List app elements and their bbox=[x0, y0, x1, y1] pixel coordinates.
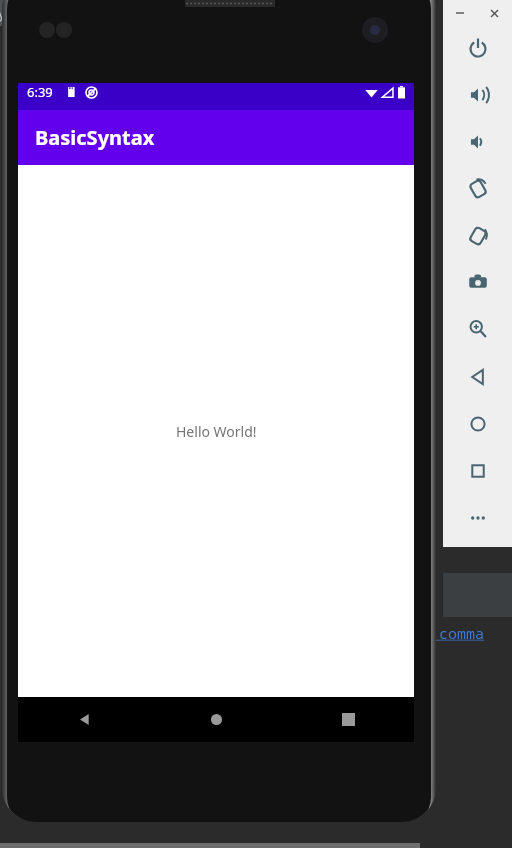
button[interactable]: Minimize bbox=[443, 0, 477, 26]
button[interactable]: Overview bbox=[443, 451, 512, 491]
button[interactable]: Back bbox=[18, 697, 150, 742]
button[interactable]: Take screenshot bbox=[443, 262, 512, 302]
staticText: 6:39 bbox=[27, 83, 53, 101]
button[interactable]: BasicSyntax bbox=[18, 110, 414, 165]
button[interactable]: Home bbox=[150, 697, 282, 742]
button[interactable]: Close bbox=[477, 0, 512, 26]
staticText: BasicSyntax bbox=[35, 124, 155, 151]
staticText: Hello World! bbox=[176, 422, 257, 441]
button[interactable]: Power bbox=[443, 28, 512, 68]
button[interactable]: Home bbox=[443, 404, 512, 444]
button[interactable]: More bbox=[443, 498, 512, 538]
button[interactable]: Recent apps bbox=[282, 697, 414, 742]
button[interactable]: Volume down bbox=[443, 122, 512, 162]
button[interactable]: Zoom bbox=[443, 309, 512, 349]
staticText: :comma bbox=[430, 623, 485, 643]
staticText: ynta bbox=[0, 3, 27, 22]
button[interactable]: Back bbox=[443, 357, 512, 397]
button[interactable]: Rotate left bbox=[443, 169, 512, 209]
button[interactable]: Rotate right bbox=[443, 216, 512, 256]
button[interactable]: Volume up bbox=[443, 75, 512, 115]
